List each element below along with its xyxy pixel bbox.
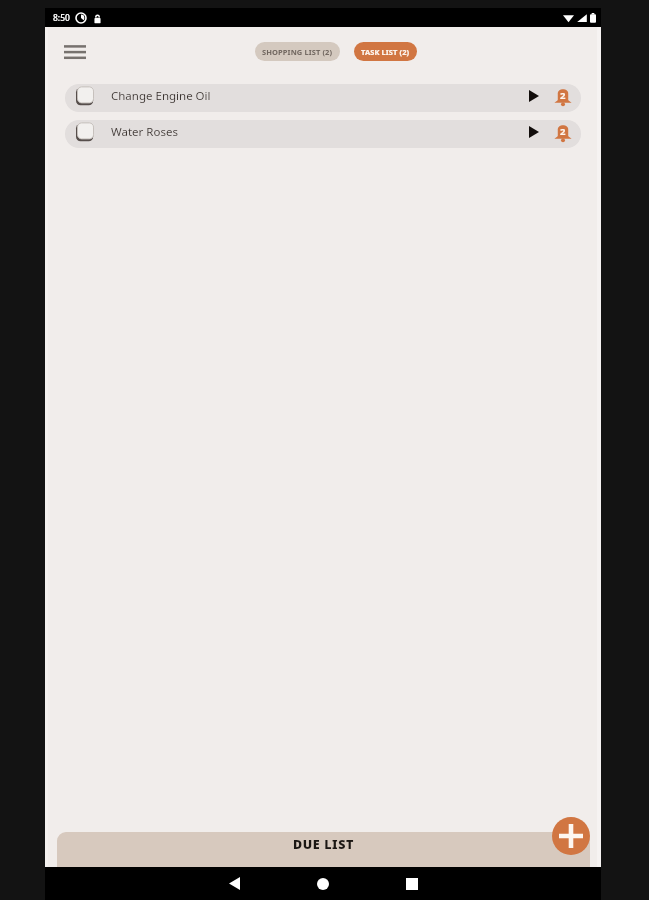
button[interactable]: DUE LIST [57, 832, 590, 867]
button[interactable]: Start timer [523, 121, 545, 143]
button[interactable]: Reminders [552, 121, 574, 143]
staticText: 2 [560, 125, 566, 138]
button[interactable]: Water Roses [65, 120, 581, 148]
staticText: 2 [560, 89, 566, 102]
staticText: DUE LIST [293, 836, 354, 853]
button[interactable]: Back [219, 867, 250, 900]
staticText: TASK LIST (2) [361, 47, 410, 57]
staticText: 8:50 [53, 12, 70, 24]
staticText: Water Roses [111, 124, 178, 140]
button[interactable]: Recent apps [396, 867, 427, 900]
button[interactable]: SHOPPING LIST (2) [255, 42, 340, 61]
button[interactable]: Change Engine Oil [65, 84, 581, 112]
button[interactable]: Start timer [523, 85, 545, 107]
button[interactable]: Add task [552, 817, 590, 855]
staticText: Change Engine Oil [111, 88, 211, 104]
button[interactable]: TASK LIST (2) [354, 42, 417, 61]
button[interactable]: Reminders [552, 85, 574, 107]
button[interactable]: Home [307, 867, 338, 900]
button[interactable]: Open navigation menu [55, 32, 95, 72]
staticText: SHOPPING LIST (2) [262, 47, 333, 57]
